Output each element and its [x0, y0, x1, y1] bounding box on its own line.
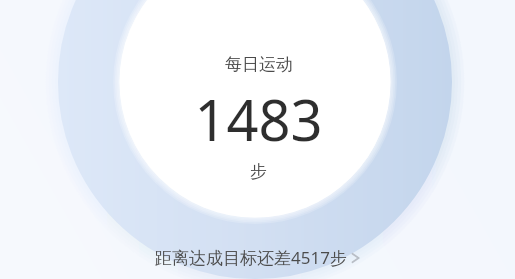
- button[interactable]: 距离达成目标还差4517步: [145, 242, 371, 273]
- other: 查看详情: [350, 249, 361, 267]
- staticText: 每日运动: [225, 54, 293, 75]
- staticText: 1483: [194, 81, 323, 157]
- staticText: 步: [250, 161, 267, 182]
- staticText: 距离达成目标还差4517步: [155, 246, 347, 269]
